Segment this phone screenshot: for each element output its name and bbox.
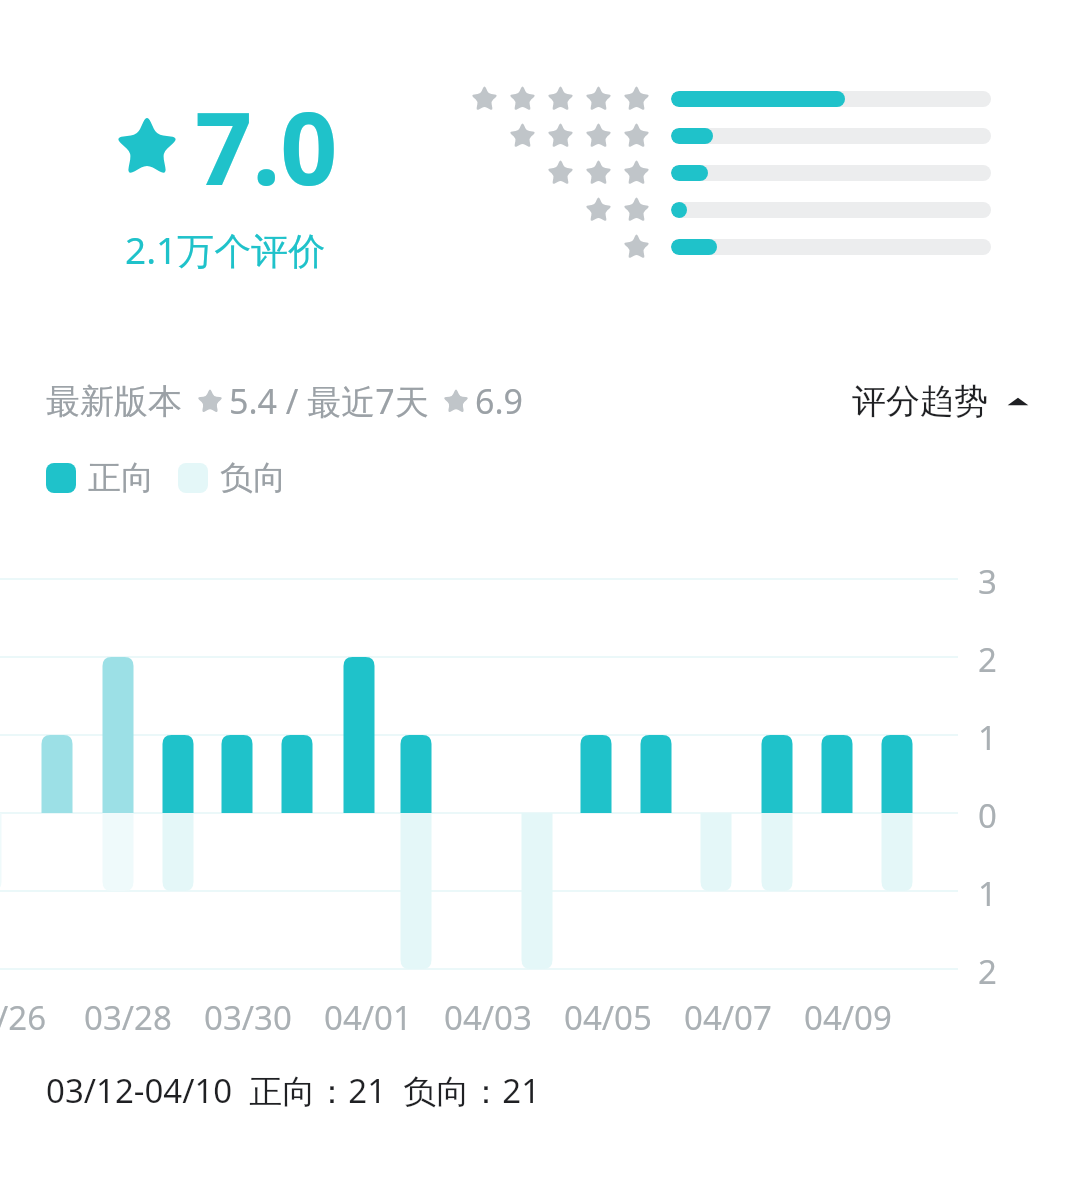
button[interactable]: 评分趋势 [848, 376, 1034, 427]
staticText: 04/05 [564, 995, 652, 1040]
other: Collapse rating trend [1006, 390, 1030, 414]
staticText: 04/03 [444, 995, 532, 1040]
staticText: 最新版本 [46, 380, 182, 423]
staticText: 正向 [88, 457, 154, 499]
staticText: 04/01 [324, 995, 412, 1040]
staticText: 03/30 [204, 995, 292, 1040]
staticText: 5.4 / 最近7天 [229, 378, 429, 424]
staticText: /26 [0, 995, 47, 1040]
staticText: 7.0 [195, 78, 338, 214]
staticText: 2 [978, 949, 997, 994]
staticText: 0 [978, 793, 997, 838]
staticText: 1 [978, 871, 997, 916]
staticText: 04/07 [684, 995, 772, 1040]
staticText: 负向 [220, 457, 286, 499]
staticText: 6.9 [475, 378, 524, 424]
staticText: 3 [978, 559, 997, 604]
staticText: 2.1万个评价 [125, 224, 326, 275]
staticText: 评分趋势 [852, 380, 988, 423]
staticText: 2 [978, 637, 997, 682]
staticText: 03/12-04/10 正向：21 负向：21 [46, 1068, 541, 1113]
staticText: 04/09 [804, 995, 892, 1040]
staticText: 03/28 [84, 995, 172, 1040]
staticText: 1 [978, 715, 997, 760]
